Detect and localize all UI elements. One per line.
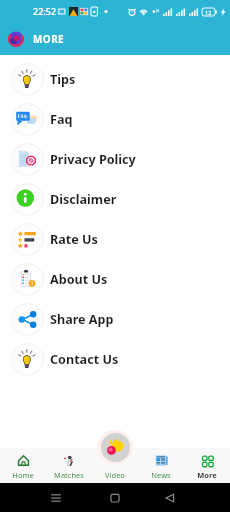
button[interactable]: More <box>184 448 230 483</box>
button[interactable]: Faq <box>0 99 230 139</box>
button[interactable]: Home <box>105 488 125 508</box>
button[interactable]: Video <box>97 430 133 465</box>
button[interactable]: Privacy Policy <box>0 139 230 179</box>
staticText: MORE <box>33 32 65 46</box>
staticText: Rate Us <box>50 231 98 248</box>
button[interactable]: Share App <box>0 299 230 339</box>
staticText: Contact Us <box>50 351 119 368</box>
staticText: Matches <box>54 470 84 480</box>
button[interactable]: News <box>138 448 184 483</box>
button[interactable]: Matches <box>46 448 92 483</box>
staticText: Home <box>12 470 34 480</box>
button[interactable]: Contact Us <box>0 339 230 379</box>
staticText: Privacy Policy <box>50 151 136 168</box>
button[interactable]: About Us <box>0 259 230 299</box>
button[interactable]: Disclaimer <box>0 179 230 219</box>
staticText: Faq <box>50 111 73 128</box>
staticText: 12 <box>205 9 212 16</box>
button[interactable]: Back <box>160 488 180 508</box>
staticText: Disclaimer <box>50 191 117 208</box>
button[interactable]: Rate Us <box>0 219 230 259</box>
staticText: Tips <box>50 71 76 88</box>
button[interactable]: Recent apps <box>46 488 66 508</box>
staticText: News <box>151 470 171 480</box>
staticText: About Us <box>50 271 108 288</box>
staticText: Share App <box>50 311 114 328</box>
staticText: 22:52 <box>33 5 57 17</box>
staticText: Video <box>105 470 125 480</box>
button[interactable]: Tips <box>0 59 230 99</box>
button[interactable]: Home <box>0 448 46 483</box>
staticText: More <box>197 470 217 480</box>
button[interactable]: Video <box>92 448 138 483</box>
